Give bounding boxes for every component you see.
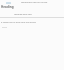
staticText: sample text here for the top <box>21 1 48 4</box>
staticText: more <box>2 26 7 29</box>
staticText: Heading <box>1 5 14 9</box>
staticText: centered body text <box>14 13 32 16</box>
staticText: a longer line of small gray text across <box>1 21 36 24</box>
